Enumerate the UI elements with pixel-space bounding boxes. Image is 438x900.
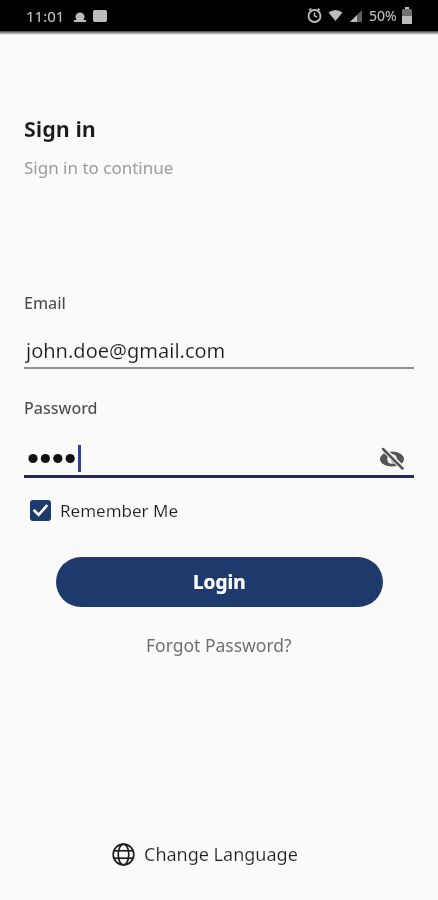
button[interactable]: Forgot Password? [146, 633, 292, 657]
staticText: Sign in [24, 114, 96, 143]
staticText: 11:01 [26, 6, 65, 26]
staticText: Password [24, 397, 98, 419]
button[interactable]: Change Language [112, 842, 298, 867]
button[interactable]: Login [56, 557, 383, 607]
staticText: Sign in to continue [24, 156, 174, 179]
staticText: Email [24, 292, 66, 314]
staticText: john.doe@gmail.com [26, 337, 226, 364]
staticText: Login [193, 569, 246, 595]
staticText: 50% [369, 6, 397, 25]
button[interactable] [380, 447, 404, 471]
button[interactable]: Remember Me [30, 499, 179, 522]
staticText: Change Language [144, 842, 298, 867]
staticText: Remember Me [60, 499, 179, 522]
